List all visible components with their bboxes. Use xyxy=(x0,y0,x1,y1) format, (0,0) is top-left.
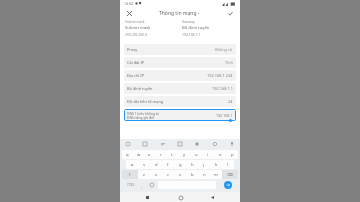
button[interactable]: DNS 1 (nếu không bị xyxy=(124,109,236,121)
staticText: ⇧ xyxy=(128,172,132,177)
staticText: m xyxy=(214,172,218,178)
button[interactable]: Gần đây xyxy=(143,193,152,202)
button[interactable]: Xóa xyxy=(176,140,184,148)
staticText: a xyxy=(131,162,134,168)
button[interactable]: Giọng nói xyxy=(228,140,236,148)
button[interactable]: Proxy xyxy=(124,44,236,55)
button[interactable]: d xyxy=(150,160,162,169)
button[interactable]: j xyxy=(198,160,210,169)
button[interactable]: Chủ đề xyxy=(211,140,219,148)
button[interactable]: z xyxy=(138,170,150,179)
button[interactable]: Địa chỉ IP xyxy=(124,70,236,81)
button[interactable]: r xyxy=(155,150,166,159)
staticText: u xyxy=(195,152,198,158)
staticText: f xyxy=(167,162,169,168)
staticText: q xyxy=(126,152,129,158)
staticText: Thông tin mạng - xyxy=(159,10,200,17)
button[interactable]: y xyxy=(178,150,190,159)
staticText: x xyxy=(155,172,158,178)
staticText: 24 xyxy=(228,99,233,104)
staticText: ⌫ xyxy=(227,172,233,177)
staticText: l xyxy=(227,162,229,168)
button[interactable]: x xyxy=(150,170,162,179)
button[interactable]: Đóng xyxy=(125,9,134,18)
staticText: Độ dài tiền tố mạng xyxy=(127,99,164,104)
staticText: DNS nâng ghi đè) xyxy=(127,115,155,119)
button[interactable]: GIF xyxy=(141,140,149,148)
staticText: Subnet mask xyxy=(125,20,145,24)
button[interactable]: h xyxy=(186,160,198,169)
button[interactable]: b xyxy=(186,170,198,179)
button[interactable]: Cài đặt xyxy=(193,140,201,148)
staticText: Gateway xyxy=(182,20,195,24)
staticText: Bộ định tuyến xyxy=(182,25,210,31)
button[interactable]: l xyxy=(222,160,234,169)
button[interactable]: Xóa xyxy=(222,170,238,179)
button[interactable]: k xyxy=(210,160,222,169)
staticText: 192.168.1 xyxy=(216,113,233,118)
button[interactable]: Lưu xyxy=(226,9,235,18)
button[interactable]: Quay lại xyxy=(208,193,217,202)
button[interactable]: Dấu phẩy xyxy=(138,180,146,190)
button[interactable]: a xyxy=(126,160,138,169)
button[interactable]: i xyxy=(202,150,214,159)
button[interactable]: Trang chủ xyxy=(176,193,185,202)
button[interactable]: n xyxy=(198,170,210,179)
button[interactable]: s xyxy=(138,160,150,169)
staticText: Proxy xyxy=(127,47,138,52)
staticText: k xyxy=(215,162,218,168)
staticText: 192.168.1.1 xyxy=(212,86,233,91)
staticText: Subnet mask xyxy=(125,25,151,31)
staticText: 192.168.1.234 xyxy=(207,73,233,78)
staticText: y xyxy=(183,152,186,158)
staticText: t xyxy=(171,152,173,158)
staticText: o xyxy=(219,152,222,158)
button[interactable]: Shift xyxy=(122,170,138,179)
staticText: 192.168.1.1 xyxy=(182,32,201,37)
button[interactable]: Ký hiệu xyxy=(122,180,138,190)
staticText: w xyxy=(137,152,141,158)
staticText: j xyxy=(203,162,205,168)
button[interactable]: Cài đặt IP xyxy=(124,57,236,68)
staticText: i xyxy=(207,152,209,158)
button[interactable]: Văn bản xyxy=(159,140,167,148)
staticText: p xyxy=(231,152,234,158)
staticText: ?123 xyxy=(127,183,134,187)
staticText: n xyxy=(203,172,206,178)
staticText: h xyxy=(191,162,194,168)
button[interactable]: p xyxy=(226,150,238,159)
button[interactable]: Emoji xyxy=(146,180,157,190)
button[interactable]: u xyxy=(190,150,202,159)
button[interactable]: Xong xyxy=(224,181,232,189)
staticText: r xyxy=(160,152,162,158)
staticText: Bộ định tuyến xyxy=(127,86,153,91)
button[interactable]: o xyxy=(214,150,226,159)
button[interactable]: f xyxy=(162,160,174,169)
button[interactable]: m xyxy=(210,170,222,179)
button[interactable]: g xyxy=(174,160,186,169)
staticText: z xyxy=(143,172,145,178)
button[interactable]: Bộ định tuyến xyxy=(124,83,236,94)
button[interactable]: t xyxy=(166,150,178,159)
staticText: v xyxy=(179,172,182,178)
staticText: Cài đặt IP xyxy=(127,60,145,65)
button[interactable]: w xyxy=(133,150,144,159)
button[interactable]: c xyxy=(162,170,174,179)
staticText: e xyxy=(148,152,151,158)
button[interactable]: v xyxy=(174,170,186,179)
staticText: , xyxy=(141,183,143,188)
staticText: g xyxy=(179,162,182,168)
button[interactable]: q xyxy=(122,150,133,159)
staticText: c xyxy=(167,172,170,178)
staticText: DNS 1 (nếu không bị xyxy=(127,111,159,115)
staticText: Tĩnh xyxy=(225,60,233,65)
staticText: Không có xyxy=(215,47,233,52)
button[interactable]: e xyxy=(144,150,155,159)
staticText: d xyxy=(155,162,158,168)
button[interactable]: Emoji xyxy=(124,140,132,148)
staticText: 14:04 xyxy=(124,1,133,6)
staticText: 255.255.255.0 xyxy=(125,32,148,37)
button[interactable]: Độ dài tiền tố mạng xyxy=(124,96,236,107)
staticText: Địa chỉ IP xyxy=(127,73,144,78)
